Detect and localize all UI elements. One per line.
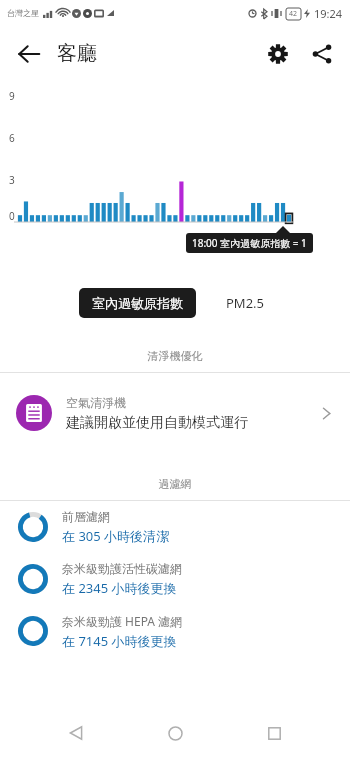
staticText: 奈米級勁護活性碳濾網 — [62, 561, 182, 576]
staticText: 3 — [9, 173, 15, 187]
button[interactable]: Back — [53, 710, 99, 756]
staticText: 在 2345 小時後更換 — [62, 579, 177, 597]
button[interactable]: 空氣清淨機 — [0, 373, 350, 453]
button[interactable]: 室內過敏原指數 — [79, 288, 196, 318]
staticText: 0 — [9, 209, 15, 223]
staticText: 台灣之星 — [7, 8, 39, 18]
staticText: 室內過敏原指數 — [92, 295, 183, 311]
staticText: 空氣清淨機 — [66, 395, 126, 410]
button[interactable]: Share — [300, 32, 344, 76]
button[interactable]: Back — [7, 32, 51, 76]
button[interactable]: 奈米級勁護活性碳濾網 — [0, 553, 350, 605]
button[interactable]: PM2.5 — [220, 287, 271, 319]
staticText: 在 305 小時後清潔 — [62, 527, 170, 545]
button[interactable]: Home — [152, 710, 198, 756]
staticText: 建議開啟並使用自動模式運行 — [66, 414, 248, 432]
button[interactable]: Settings — [256, 32, 300, 76]
button[interactable]: Recents — [251, 710, 297, 756]
staticText: 奈米級勁護 HEPA 濾網 — [62, 613, 183, 629]
staticText: PM2.5 — [226, 294, 265, 312]
staticText: 6 — [9, 131, 15, 145]
staticText: 前層濾網 — [62, 509, 110, 524]
staticText: 9 — [9, 89, 15, 103]
staticText: 過濾網 — [0, 477, 350, 491]
staticText: 42 — [289, 9, 298, 19]
button[interactable]: 奈米級勁護 HEPA 濾網 — [0, 605, 350, 657]
staticText: 在 7145 小時後更換 — [62, 632, 177, 650]
button[interactable]: 前層濾網 — [0, 501, 350, 553]
staticText: 清淨機優化 — [0, 349, 350, 363]
staticText: 19:24 — [314, 6, 343, 21]
staticText: 客廳 — [57, 41, 97, 66]
staticText: 18:00 室內過敏原指數 = 1 — [192, 236, 307, 250]
